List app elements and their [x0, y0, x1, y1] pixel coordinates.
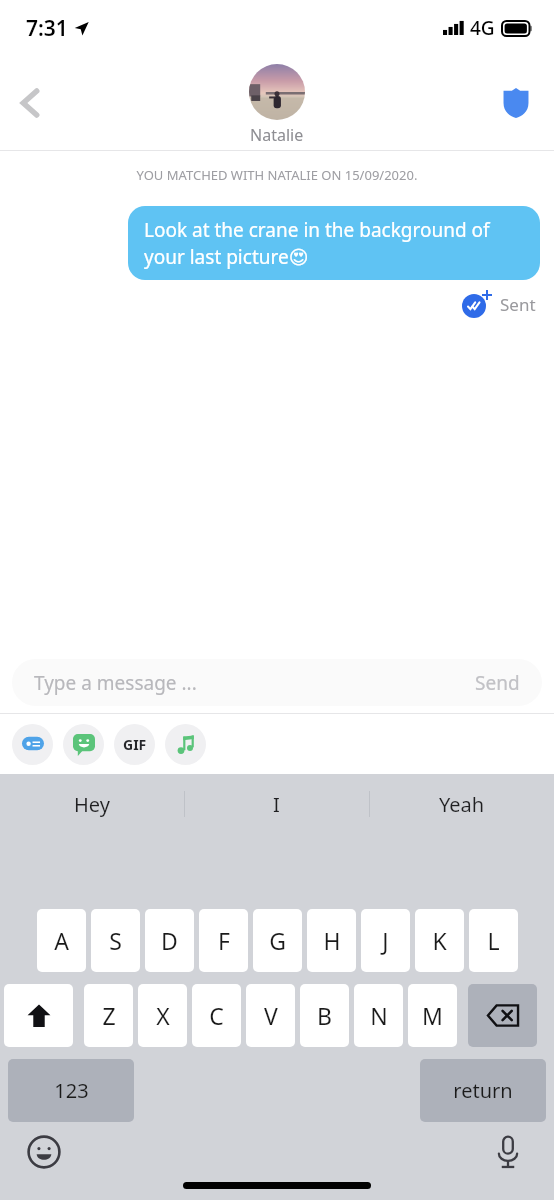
staticText: Look at the crane in the background of y… [144, 217, 524, 269]
button[interactable]: Dictation [486, 1130, 530, 1174]
button[interactable]: Sticker [63, 724, 104, 765]
staticText: Z [102, 1000, 116, 1031]
staticText: Hey [74, 791, 110, 818]
staticText: 123 [54, 1077, 89, 1104]
staticText: S [109, 925, 122, 956]
button[interactable]: GIF [114, 724, 155, 765]
button[interactable]: G [253, 909, 302, 972]
button[interactable]: Hey [0, 774, 184, 834]
staticText: C [209, 1000, 224, 1031]
button[interactable]: M [408, 984, 457, 1047]
button[interactable]: H [307, 909, 356, 972]
staticText: M [422, 1000, 443, 1031]
button[interactable]: N [354, 984, 403, 1047]
button[interactable]: Yeah [369, 774, 554, 834]
button[interactable]: D [145, 909, 194, 972]
staticText: F [218, 925, 230, 956]
button[interactable]: Natalie [249, 64, 305, 146]
staticText: Send [475, 670, 520, 696]
staticText: G [269, 925, 286, 956]
staticText: Sent [500, 293, 536, 316]
button[interactable]: J [361, 909, 410, 972]
staticText: L [487, 925, 500, 956]
staticText: D [161, 925, 178, 956]
staticText: V [264, 1000, 278, 1031]
button[interactable]: I [184, 774, 369, 834]
staticText: Type a message ... [34, 670, 475, 696]
staticText: X [156, 1000, 170, 1031]
button[interactable]: X [138, 984, 187, 1047]
staticText: Natalie [250, 124, 304, 146]
button[interactable]: C [192, 984, 241, 1047]
button[interactable]: Safety [492, 79, 540, 127]
button[interactable]: Z [84, 984, 133, 1047]
button[interactable]: Contact card [12, 724, 53, 765]
button[interactable]: L [469, 909, 518, 972]
button[interactable]: K [415, 909, 464, 972]
staticText: return [453, 1077, 513, 1104]
button[interactable]: S [91, 909, 140, 972]
button[interactable]: Backspace [468, 984, 537, 1047]
button[interactable]: B [300, 984, 349, 1047]
staticText: N [370, 1000, 388, 1031]
button[interactable]: Type a message ... [12, 659, 542, 706]
staticText: B [317, 1000, 332, 1031]
staticText: K [432, 925, 447, 956]
button[interactable]: Back [4, 77, 56, 129]
staticText: J [382, 925, 389, 956]
button[interactable]: return [420, 1059, 546, 1122]
button[interactable]: 123 [8, 1059, 134, 1122]
staticText: 7:31 [26, 14, 68, 43]
button[interactable]: Music [165, 724, 206, 765]
staticText: H [323, 925, 341, 956]
button[interactable]: A [37, 909, 86, 972]
button[interactable]: Shift [4, 984, 73, 1047]
staticText: 4G [470, 15, 495, 41]
button[interactable]: Look at the crane in the background of y… [128, 206, 540, 280]
staticText: I [273, 791, 280, 818]
staticText: Yeah [439, 791, 485, 818]
staticText: YOU MATCHED WITH NATALIE ON 15/09/2020. [0, 166, 554, 184]
button[interactable]: Emoji [22, 1130, 66, 1174]
button[interactable]: V [246, 984, 295, 1047]
button[interactable]: F [199, 909, 248, 972]
staticText: GIF [123, 735, 147, 754]
staticText: A [54, 925, 69, 956]
